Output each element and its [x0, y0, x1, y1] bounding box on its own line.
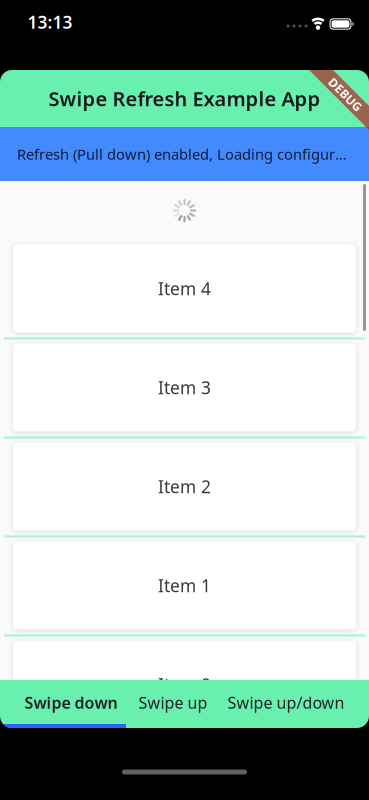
staticText: Item 0 [158, 673, 211, 696]
staticText: 13:13 [27, 10, 72, 33]
staticText: Swipe up [138, 692, 207, 713]
staticText: Refresh (Pull down) enabled, Loading con… [17, 144, 354, 164]
staticText: DEBUG [324, 86, 366, 102]
staticText: Item 4 [158, 277, 211, 300]
staticText: Item 3 [158, 376, 211, 399]
staticText: Item 1 [158, 574, 211, 597]
staticText: Swipe up/down [227, 692, 344, 713]
staticText: Item 2 [158, 475, 211, 498]
staticText: Swipe down [24, 692, 117, 713]
button[interactable]: Swipe up [126, 680, 218, 728]
button[interactable]: Swipe down [0, 680, 126, 728]
staticText: Swipe Refresh Example App [48, 85, 320, 112]
button[interactable]: Swipe up/down [218, 680, 369, 728]
